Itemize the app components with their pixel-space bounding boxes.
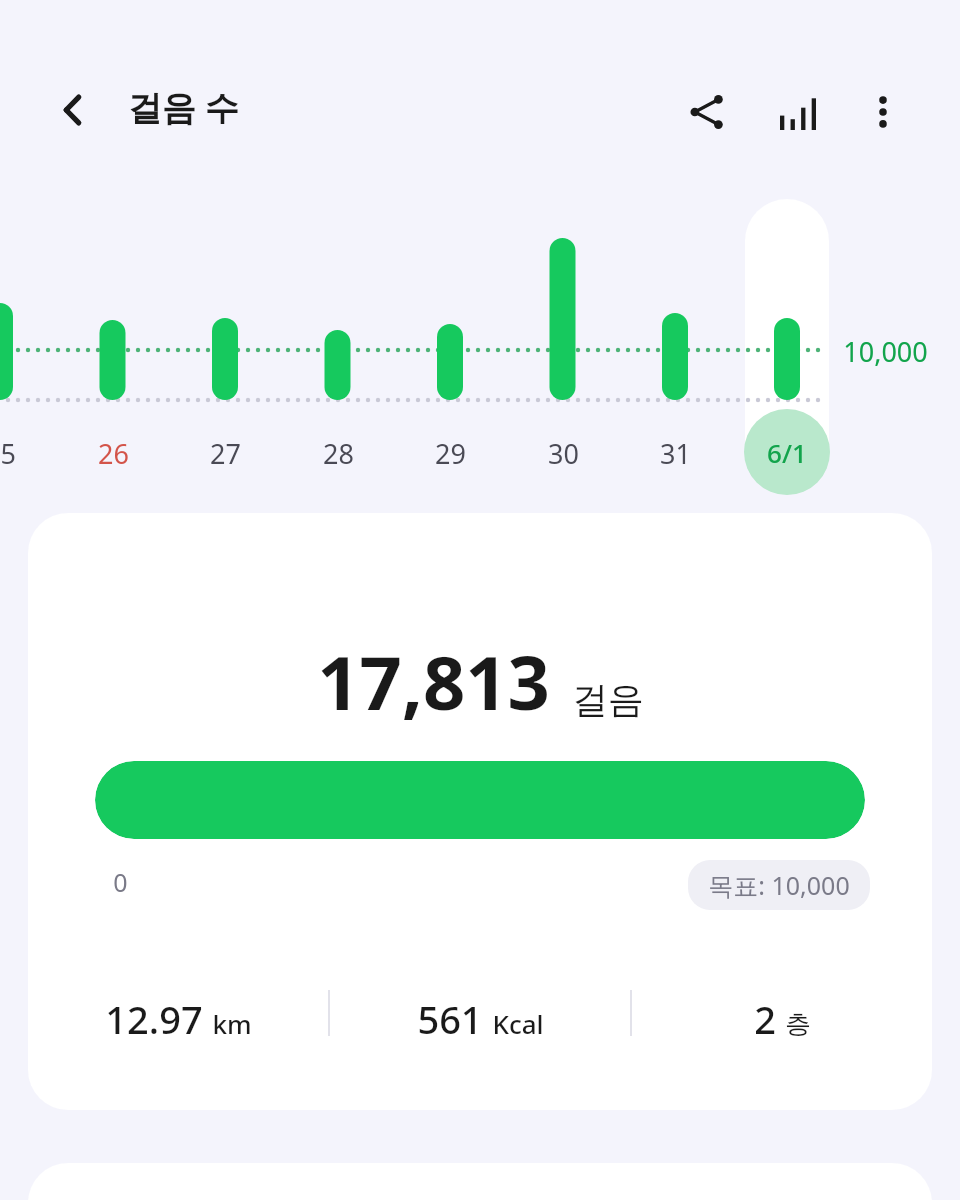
button[interactable]: 17,813 [28, 513, 932, 1110]
button[interactable]: 31 [635, 430, 715, 476]
staticText: 29 [435, 435, 466, 472]
button[interactable]: 6/1 [744, 409, 830, 495]
staticText: 12.97 [105, 993, 203, 1045]
button[interactable]: 561 [330, 981, 630, 1045]
button[interactable]: 27 [185, 430, 265, 476]
button[interactable]: Back [44, 80, 104, 140]
button[interactable] [745, 199, 829, 491]
button[interactable]: Share [677, 82, 737, 142]
staticText: 17,813 [317, 631, 550, 732]
staticText: 2 [754, 993, 776, 1045]
button[interactable]: More options [853, 82, 913, 142]
button[interactable]: 목표: 10,000 [688, 860, 870, 910]
button[interactable]: 2 [632, 981, 932, 1045]
staticText: km [212, 1006, 252, 1041]
staticText: 561 [417, 993, 483, 1045]
staticText: 25 [0, 435, 16, 472]
button[interactable]: 30 [523, 430, 603, 476]
staticText: 걸음 [572, 677, 644, 722]
staticText: Kcal [492, 1006, 544, 1041]
staticText: 6/1 [767, 435, 807, 470]
button[interactable]: 29 [410, 430, 490, 476]
button[interactable]: 25 [0, 430, 40, 476]
staticText: 10,000 [843, 333, 928, 370]
staticText: 26 [98, 435, 129, 472]
staticText: 31 [660, 435, 691, 472]
button[interactable]: 걸음 수 [128, 84, 239, 130]
staticText: 층 [785, 1008, 811, 1041]
staticText: 걸음 수 [128, 84, 239, 130]
staticText: 목표: 10,000 [708, 868, 850, 902]
button[interactable]: 12.97 [28, 981, 328, 1045]
staticText: 0 [113, 865, 128, 899]
staticText: 28 [323, 435, 354, 472]
staticText: 27 [210, 435, 241, 472]
button[interactable]: 28 [298, 430, 378, 476]
button[interactable]: Chart [768, 82, 828, 142]
button[interactable]: 26 [73, 430, 153, 476]
staticText: 30 [548, 435, 579, 472]
